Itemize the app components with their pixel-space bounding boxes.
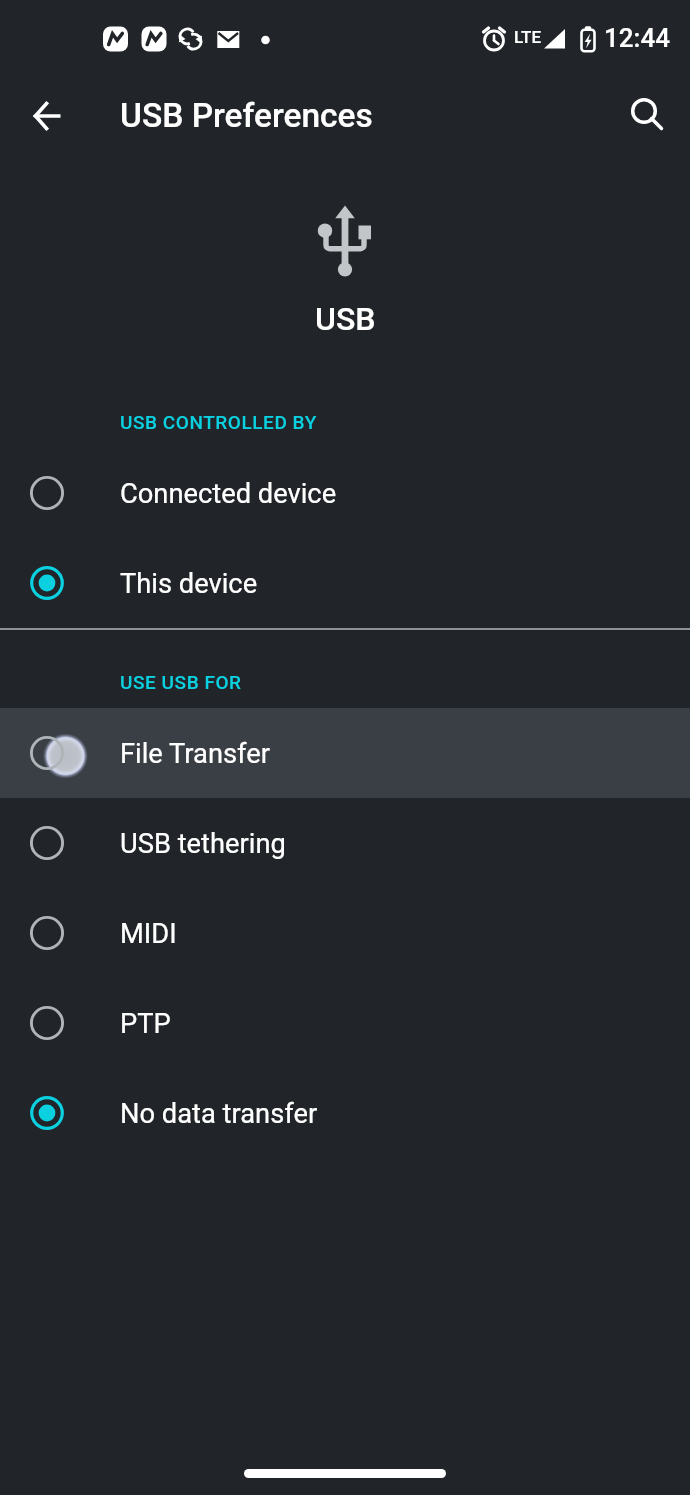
other: USB [295, 200, 395, 286]
staticText: USB tethering [120, 828, 286, 860]
staticText: No data transfer [120, 1098, 318, 1130]
button[interactable]: Navigate up [23, 92, 71, 140]
button[interactable]: Search [621, 92, 669, 140]
staticText: PTP [120, 1008, 171, 1040]
staticText: MIDI [120, 918, 177, 950]
button[interactable]: This device [0, 538, 690, 628]
button[interactable]: PTP [0, 978, 690, 1068]
staticText: 12:44 [604, 23, 670, 53]
button[interactable]: USB tethering [0, 798, 690, 888]
button[interactable]: MIDI [0, 888, 690, 978]
staticText: File Transfer [120, 738, 270, 770]
button[interactable]: Connected device [0, 448, 690, 538]
button[interactable]: File Transfer [0, 708, 690, 798]
staticText: LTE [514, 27, 542, 47]
staticText: USB Preferences [120, 96, 373, 135]
staticText: USE USB FOR [120, 671, 242, 693]
staticText: Connected device [120, 478, 337, 510]
staticText: USB [315, 300, 376, 338]
staticText: This device [120, 568, 258, 600]
staticText: USB CONTROLLED BY [120, 411, 317, 433]
button[interactable]: No data transfer [0, 1068, 690, 1158]
